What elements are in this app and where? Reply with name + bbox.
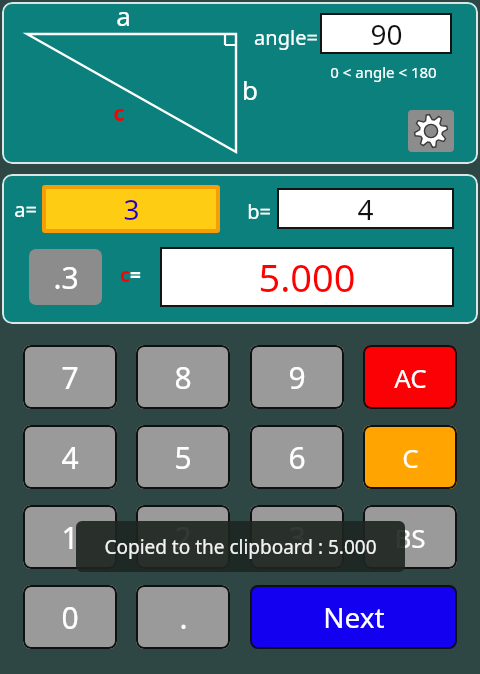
- staticText: a=: [14, 196, 37, 223]
- button[interactable]: 5.000: [162, 249, 452, 305]
- staticText: Next: [323, 598, 385, 636]
- staticText: b: [242, 72, 258, 107]
- button[interactable]: 6: [250, 425, 344, 489]
- staticText: c: [120, 262, 130, 288]
- staticText: =: [130, 262, 141, 288]
- button[interactable]: C: [363, 425, 457, 489]
- button[interactable]: AC: [363, 345, 457, 409]
- staticText: 2: [174, 517, 192, 558]
- button[interactable]: 8: [136, 345, 230, 409]
- staticText: 5.000: [258, 251, 356, 303]
- staticText: 6: [288, 437, 306, 478]
- staticText: Copied to the clipboard : 5.000: [104, 534, 377, 560]
- staticText: 3: [123, 190, 140, 228]
- button[interactable]: 1: [23, 505, 117, 569]
- button[interactable]: Next: [250, 585, 457, 649]
- staticText: 90: [370, 15, 403, 52]
- staticText: .3: [53, 257, 79, 298]
- staticText: .: [179, 597, 188, 638]
- staticText: 8: [174, 357, 192, 398]
- staticText: a: [116, 2, 131, 33]
- button[interactable]: 4: [279, 190, 452, 227]
- staticText: 0: [61, 597, 79, 638]
- staticText: angle=: [254, 24, 318, 51]
- staticText: BS: [394, 520, 426, 555]
- staticText: b=: [247, 198, 271, 225]
- staticText: AC: [394, 360, 427, 395]
- button[interactable]: BS: [363, 505, 457, 569]
- staticText: 4: [357, 190, 374, 227]
- staticText: 4: [61, 437, 79, 478]
- button[interactable]: 0: [23, 585, 117, 649]
- button[interactable]: Settings: [408, 110, 454, 152]
- staticText: 7: [61, 357, 79, 398]
- button[interactable]: 90: [322, 15, 450, 52]
- button[interactable]: 5: [136, 425, 230, 489]
- button[interactable]: 9: [250, 345, 344, 409]
- button[interactable]: 7: [23, 345, 117, 409]
- button[interactable]: 3: [250, 505, 344, 569]
- staticText: 1: [61, 517, 79, 558]
- staticText: c: [113, 97, 125, 127]
- staticText: 9: [288, 357, 306, 398]
- staticText: 5: [174, 437, 192, 478]
- button[interactable]: 3: [46, 189, 216, 229]
- button[interactable]: 2: [136, 505, 230, 569]
- staticText: C: [402, 440, 419, 475]
- staticText: 0 < angle < 180: [330, 62, 437, 82]
- button[interactable]: .3: [29, 249, 102, 305]
- button[interactable]: .: [136, 585, 230, 649]
- staticText: 3: [288, 517, 306, 558]
- button[interactable]: 4: [23, 425, 117, 489]
